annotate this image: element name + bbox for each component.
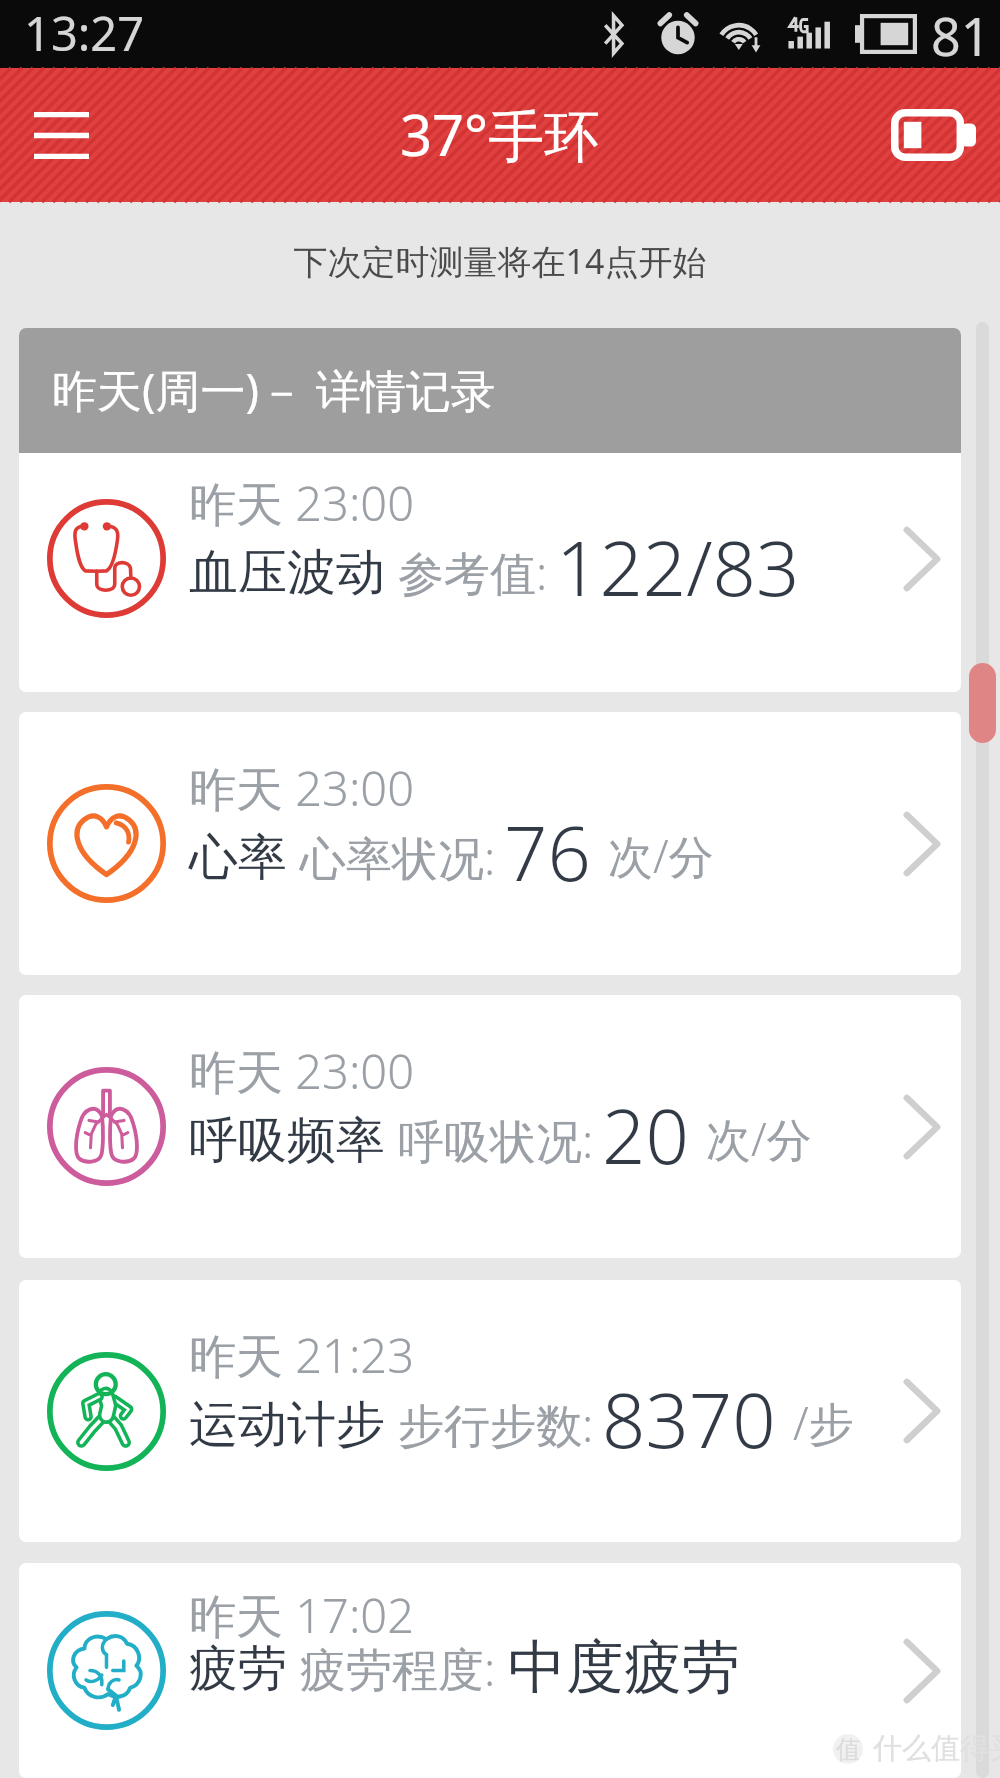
staticText: 8370 — [602, 1367, 776, 1471]
staticText: 值 — [836, 1734, 861, 1764]
staticText: 次/分 — [706, 1108, 812, 1169]
staticText: 次/分 — [608, 825, 714, 886]
staticText: 呼吸频率 — [189, 1110, 385, 1172]
staticText: 中度疲劳 — [508, 1631, 740, 1704]
button[interactable]: 昨天 23:00 — [19, 712, 961, 975]
staticText: 81 — [931, 0, 991, 66]
staticText: 37°手环 — [400, 96, 601, 172]
staticText: 参考值: — [398, 541, 548, 604]
staticText: 昨天 23:00 — [189, 756, 415, 820]
staticText: 血压波动 — [189, 542, 385, 604]
staticText: 呼吸状况: — [398, 1109, 594, 1172]
other: Details — [889, 1094, 955, 1160]
staticText: 13:27 — [24, 1, 145, 65]
staticText: 什么值得买 — [873, 1730, 1000, 1767]
other: Details — [889, 1378, 955, 1444]
button[interactable]: 昨天 21:23 — [19, 1280, 961, 1542]
other: Details — [889, 1638, 955, 1704]
staticText: 122/83 — [556, 515, 800, 619]
staticText: 昨天 21:23 — [189, 1323, 415, 1387]
staticText: 昨天 17:02 — [189, 1583, 415, 1647]
staticText: 76 — [504, 800, 591, 904]
staticText: 运动计步 — [189, 1394, 385, 1456]
staticText: 疲劳程度: — [300, 1637, 496, 1700]
other: Details — [889, 811, 955, 877]
staticText: 步行步数: — [398, 1393, 594, 1456]
button[interactable]: 昨天 17:02 — [19, 1563, 961, 1778]
staticText: 昨天 23:00 — [189, 1039, 415, 1103]
staticText: 昨天(周一)－ 详情记录 — [52, 359, 496, 420]
staticText: 心率状况: — [300, 826, 496, 889]
button[interactable]: Menu — [6, 80, 116, 190]
other: Details — [889, 526, 955, 592]
button[interactable]: 昨天 23:00 — [19, 453, 961, 692]
staticText: 疲劳 — [189, 1638, 287, 1700]
staticText: 昨天 23:00 — [189, 471, 415, 535]
button[interactable]: 昨天 23:00 — [19, 995, 961, 1258]
staticText: 心率 — [189, 827, 287, 889]
staticText: 下次定时测量将在14点开始 — [0, 238, 1000, 284]
staticText: /步 — [793, 1392, 854, 1453]
button[interactable]: 昨天(周一)－ 详情记录 — [19, 328, 961, 453]
staticText: 20 — [602, 1083, 689, 1187]
button[interactable]: Band battery — [878, 94, 988, 176]
